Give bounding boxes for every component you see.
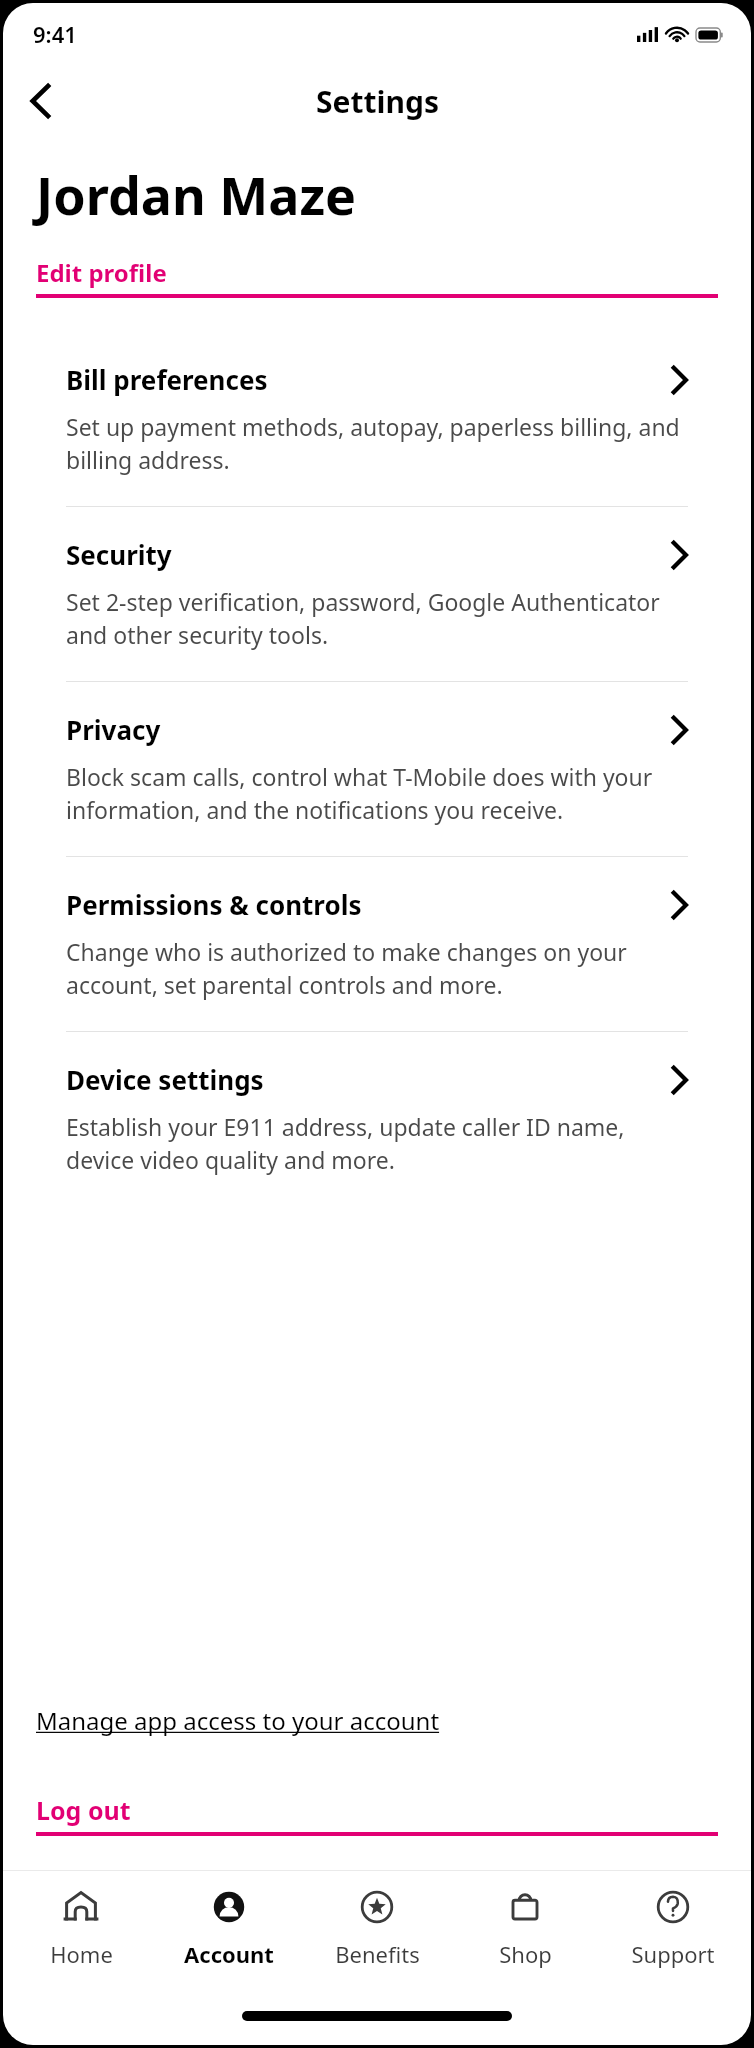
staticText: Jordan Maze xyxy=(36,159,357,230)
button[interactable]: Benefits xyxy=(307,1871,447,1969)
button[interactable]: Security xyxy=(36,507,718,681)
staticText: Set 2-step verification, password, Googl… xyxy=(66,586,688,651)
staticText: Support xyxy=(631,1939,715,1969)
staticText: Account xyxy=(184,1939,274,1969)
button[interactable]: Manage app access to your account xyxy=(36,1704,440,1737)
staticText: Manage app access to your account xyxy=(36,1704,440,1737)
button[interactable]: Account xyxy=(159,1871,299,1969)
staticText: Shop xyxy=(499,1939,552,1969)
button[interactable]: Log out xyxy=(36,1793,718,1836)
staticText: Establish your E911 address, update call… xyxy=(66,1111,688,1176)
staticText: Permissions & controls xyxy=(66,887,671,922)
button[interactable]: Bill preferences xyxy=(36,328,718,506)
staticText: Home xyxy=(50,1939,113,1969)
button[interactable]: Permissions & controls xyxy=(36,857,718,1031)
staticText: Set up payment methods, autopay, paperle… xyxy=(66,411,688,476)
button[interactable]: Home xyxy=(11,1871,151,1969)
button[interactable]: Privacy xyxy=(36,682,718,856)
button[interactable]: Back xyxy=(13,73,69,129)
staticText: Benefits xyxy=(335,1939,420,1969)
staticText: Device settings xyxy=(66,1062,671,1097)
staticText: Bill preferences xyxy=(66,362,671,397)
button[interactable]: Support xyxy=(603,1871,743,1969)
staticText: 9:41 xyxy=(33,19,77,49)
button[interactable]: Edit profile xyxy=(36,256,718,298)
staticText: Settings xyxy=(316,81,439,122)
staticText: Edit profile xyxy=(36,256,167,289)
staticText: Log out xyxy=(36,1793,131,1827)
staticText: Change who is authorized to make changes… xyxy=(66,936,688,1001)
button[interactable]: Shop xyxy=(455,1871,595,1969)
staticText: Privacy xyxy=(66,712,671,747)
button[interactable]: Device settings xyxy=(36,1032,718,1212)
staticText: Security xyxy=(66,537,671,572)
staticText: Block scam calls, control what T-Mobile … xyxy=(66,761,688,826)
